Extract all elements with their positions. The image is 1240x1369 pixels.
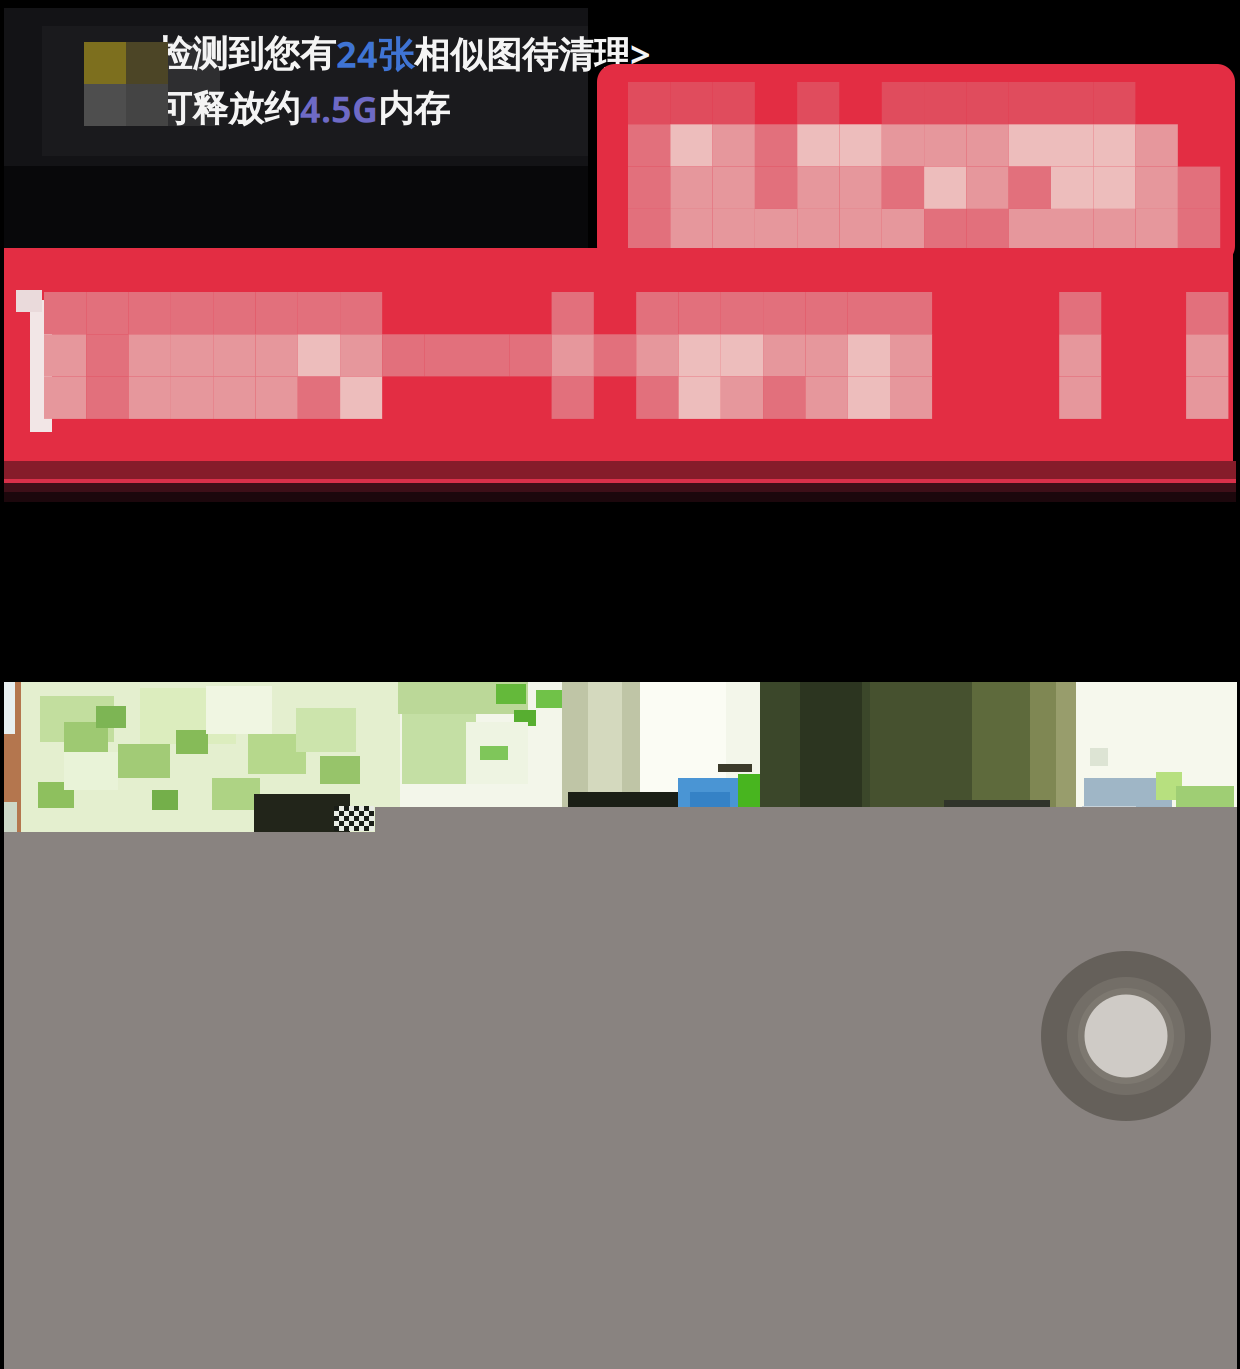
staticText: 内存 (378, 87, 450, 131)
button[interactable]: 检测到您有 (0, 8, 588, 248)
staticText: 可释放约 (156, 87, 300, 131)
staticText: 4.5G (300, 85, 378, 133)
staticText: 24张 (336, 30, 414, 78)
staticText: 相似图待清理> (414, 30, 651, 78)
button[interactable]: Shutter (1041, 951, 1211, 1121)
staticText: 检测到您有 (156, 32, 336, 76)
